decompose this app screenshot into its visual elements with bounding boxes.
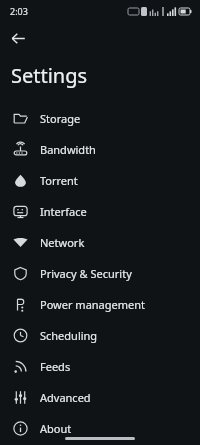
button[interactable]: Back — [4, 24, 32, 52]
button[interactable]: Torrent — [0, 165, 200, 196]
button[interactable]: Storage — [0, 103, 200, 134]
button[interactable]: Power management — [0, 289, 200, 320]
staticText: Network — [40, 235, 85, 250]
staticText: About — [40, 421, 72, 436]
button[interactable]: Scheduling — [0, 320, 200, 351]
staticText: Settings — [11, 62, 88, 89]
staticText: Scheduling — [40, 328, 98, 343]
button[interactable]: Privacy & Security — [0, 258, 200, 289]
button[interactable]: Interface — [0, 196, 200, 227]
button[interactable]: Advanced — [0, 382, 200, 413]
staticText: 2:03 — [10, 5, 28, 17]
staticText: Bandwidth — [40, 142, 96, 157]
button[interactable]: Network — [0, 227, 200, 258]
button[interactable]: Bandwidth — [0, 134, 200, 165]
staticText: Advanced — [40, 390, 91, 405]
button[interactable]: About — [0, 413, 200, 444]
staticText: Storage — [40, 111, 81, 126]
staticText: Torrent — [40, 173, 78, 188]
staticText: Interface — [40, 204, 87, 219]
staticText: Power management — [40, 297, 145, 312]
button[interactable]: Feeds — [0, 351, 200, 382]
staticText: Privacy & Security — [40, 266, 132, 281]
staticText: Feeds — [40, 359, 71, 374]
